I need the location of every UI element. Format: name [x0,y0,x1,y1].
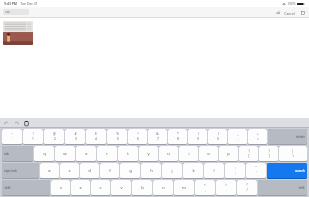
staticText: # [74,132,77,136]
button[interactable]: q [34,146,54,161]
button[interactable]: a [40,163,59,178]
button[interactable]: ( [188,129,207,144]
button[interactable]: w [55,146,75,161]
button[interactable]: delete [268,129,307,144]
button[interactable]: Undo [3,120,9,126]
staticText: ; [235,171,236,175]
button[interactable]: r [97,146,117,161]
button[interactable]: b [132,180,152,195]
button[interactable]: < [195,180,215,195]
staticText: ] [268,154,270,158]
button[interactable]: x [71,180,90,195]
button[interactable]: Tabs [299,9,306,16]
button[interactable] [3,21,33,45]
button[interactable]: f [100,163,119,178]
button[interactable]: o [199,146,218,161]
staticText: ` [12,137,13,141]
button[interactable]: u [159,146,178,161]
staticText: { [248,149,250,153]
button[interactable]: # [65,129,85,144]
button[interactable]: shift [2,180,50,195]
button[interactable]: i [179,146,198,161]
staticText: 5 [117,137,119,141]
button[interactable]: caps lock [2,163,39,178]
button[interactable]: $ [86,129,106,144]
button[interactable]: % [107,129,127,144]
button[interactable]: Paste [23,120,29,126]
button[interactable]: | [279,146,307,161]
button[interactable]: m [174,180,194,195]
button[interactable]: ^ [128,129,147,144]
staticText: ( [198,132,199,136]
button[interactable]: Cancel [284,9,295,16]
button[interactable]: p [219,146,238,161]
button[interactable]: e [76,146,96,161]
button[interactable]: j [162,163,182,178]
staticText: e [85,151,88,157]
staticText: : [235,166,236,170]
button[interactable]: z [51,180,70,195]
staticText: - [237,137,239,141]
staticText: ~ [11,132,13,136]
staticText: . [226,188,227,192]
staticText: ) [218,132,219,136]
staticText: + [257,132,259,136]
button[interactable]: t [118,146,138,161]
button[interactable]: { [239,146,258,161]
staticText: ? [246,183,248,187]
button[interactable]: ! [23,129,43,144]
staticText: & [156,132,159,136]
button[interactable]: y [139,146,158,161]
button[interactable]: g [120,163,140,178]
button[interactable]: > [216,180,236,195]
staticText: x [79,185,82,191]
staticText: w [63,151,67,157]
button[interactable]: cat [3,9,29,15]
staticText: 7 [157,137,159,141]
staticText: @ [53,132,56,136]
button[interactable]: ) [208,129,227,144]
staticText: ^ [137,132,139,136]
staticText: * [177,132,179,136]
staticText: h [150,168,153,174]
staticText: ! [33,132,34,136]
button[interactable]: k [183,163,203,178]
button[interactable]: Page settings [274,9,281,16]
button[interactable]: + [248,129,267,144]
staticText: j [171,168,173,174]
staticText: > [225,183,227,187]
staticText: n [162,185,165,191]
button[interactable]: shift [258,180,307,195]
staticText: s [68,168,71,174]
button[interactable]: * [168,129,187,144]
button[interactable]: : [225,163,245,178]
staticText: $ [95,132,97,136]
button[interactable]: ~ [2,129,22,144]
button[interactable]: @ [44,129,64,144]
staticText: } [268,149,270,153]
staticText: " [255,166,257,170]
button[interactable]: n [153,180,173,195]
button[interactable]: & [148,129,167,144]
button[interactable]: tab [2,146,33,161]
button[interactable]: ? [237,180,257,195]
button[interactable]: v [111,180,131,195]
staticText: 8 [177,137,179,141]
button[interactable]: d [80,163,99,178]
button[interactable]: s [60,163,79,178]
button[interactable]: } [259,146,278,161]
button[interactable]: l [204,163,224,178]
button[interactable]: _ [228,129,247,144]
staticText: | [292,149,294,153]
staticText: Cancel [284,11,295,15]
staticText: 0 [217,137,219,141]
button[interactable]: h [141,163,161,178]
button[interactable]: search [267,163,307,178]
button[interactable]: c [91,180,110,195]
button[interactable]: " [246,163,266,178]
staticText: a [48,168,51,174]
staticText: 1 [32,137,34,141]
staticText: / [246,188,248,192]
staticText: cat [5,10,10,14]
button[interactable]: Redo [13,120,19,126]
